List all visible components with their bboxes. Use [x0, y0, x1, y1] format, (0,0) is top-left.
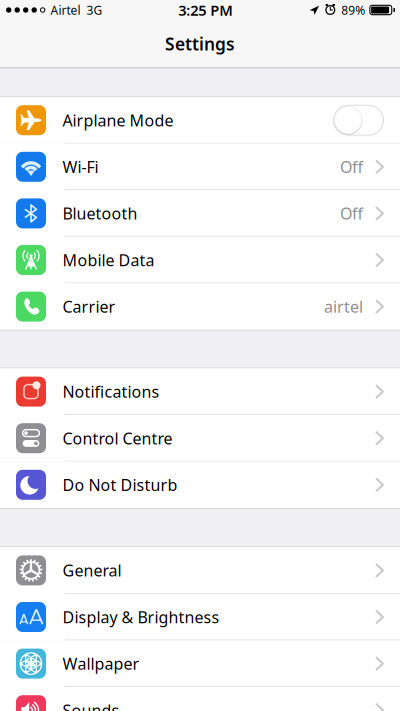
staticText: Carrier — [62, 296, 115, 317]
button[interactable]: Control Centre — [0, 415, 400, 461]
staticText: 3G — [86, 2, 102, 18]
button[interactable]: Notifications — [0, 368, 400, 415]
staticText: 89% — [341, 2, 365, 18]
staticText: Airplane Mode — [62, 110, 173, 131]
staticText: Notifications — [62, 381, 159, 402]
staticText: Off — [340, 203, 363, 224]
button[interactable]: Bluetooth — [0, 190, 400, 237]
button[interactable]: Sounds — [0, 687, 400, 711]
staticText: Wi-Fi — [62, 156, 98, 177]
button[interactable]: Wi-Fi — [0, 143, 400, 190]
button[interactable]: Mobile Data — [0, 237, 400, 283]
staticText: Display & Brightness — [62, 606, 219, 628]
staticText: airtel — [324, 296, 363, 317]
staticText: Off — [340, 156, 363, 177]
staticText: Sounds — [62, 700, 119, 711]
staticText: Settings — [165, 32, 235, 55]
button[interactable]: Carrier — [0, 283, 400, 330]
button[interactable]: Display & Brightness — [0, 594, 400, 640]
button[interactable]: Airplane Mode — [0, 97, 400, 143]
staticText: Do Not Disturb — [62, 474, 177, 495]
button[interactable]: Do Not Disturb — [0, 461, 400, 508]
button[interactable]: Wallpaper — [0, 640, 400, 687]
staticText: Mobile Data — [62, 249, 154, 271]
staticText: Airtel — [50, 2, 80, 18]
staticText: Control Centre — [62, 428, 172, 449]
staticText: Bluetooth — [62, 203, 137, 224]
button[interactable]: General — [0, 547, 400, 594]
staticText: Wallpaper — [62, 653, 139, 674]
staticText: 3:25 PM — [178, 0, 233, 20]
staticText: General — [62, 560, 121, 581]
